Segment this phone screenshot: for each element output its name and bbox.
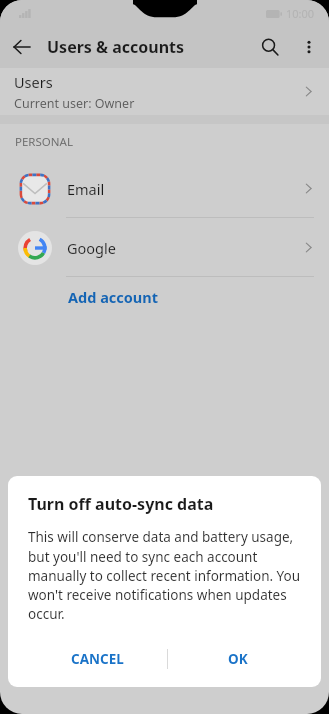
staticText: Google — [67, 238, 116, 258]
staticText: Email — [67, 179, 105, 199]
staticText: 10:00 — [286, 6, 315, 21]
button[interactable]: Google — [0, 218, 329, 277]
button[interactable]: CANCEL — [28, 639, 167, 679]
staticText: CANCEL — [71, 650, 124, 668]
staticText: PERSONAL — [15, 134, 73, 150]
staticText: Turn off auto-sync data — [28, 493, 214, 515]
staticText: Add account — [68, 287, 158, 307]
staticText: Users & accounts — [47, 36, 185, 58]
button[interactable]: OK — [168, 639, 307, 679]
button[interactable]: Add account — [66, 281, 160, 313]
staticText: Current user: Owner — [14, 95, 135, 112]
staticText: OK — [228, 650, 248, 668]
button[interactable]: More options — [289, 27, 329, 67]
button[interactable]: Users — [0, 68, 329, 115]
staticText: This will conserve data and battery usag… — [28, 528, 307, 623]
staticText: Users — [14, 72, 53, 92]
button[interactable]: Back — [0, 26, 44, 68]
button[interactable]: Email — [0, 159, 329, 218]
button[interactable]: Search — [250, 27, 290, 67]
